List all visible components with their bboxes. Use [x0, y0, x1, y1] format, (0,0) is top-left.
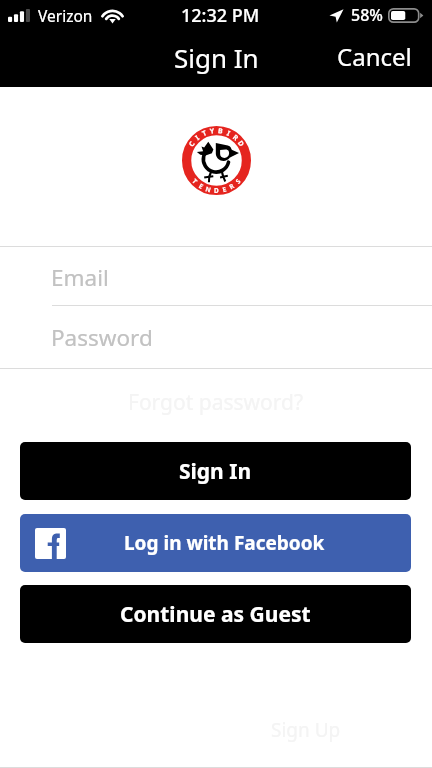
- button[interactable]: Cancel: [317, 32, 432, 81]
- staticText: Forgot password?: [128, 388, 304, 417]
- button[interactable]: Sign In: [20, 442, 411, 500]
- button[interactable]: Log in with Facebook: [20, 514, 411, 572]
- staticText: Email: [51, 262, 109, 293]
- button[interactable]: Continue as Guest: [20, 585, 411, 643]
- staticText: Sign In: [179, 457, 252, 486]
- staticText: Password: [51, 322, 153, 353]
- staticText: Continue as Guest: [120, 600, 311, 629]
- staticText: Sign In: [174, 40, 259, 75]
- staticText: Cancel: [337, 40, 412, 73]
- staticText: Log in with Facebook: [124, 530, 325, 556]
- button[interactable]: Sign Up: [271, 714, 341, 746]
- staticText: 12:32 PM: [181, 3, 260, 28]
- staticText: 58%: [351, 4, 383, 26]
- staticText: Sign Up: [271, 717, 341, 743]
- staticText: Verizon: [38, 5, 93, 26]
